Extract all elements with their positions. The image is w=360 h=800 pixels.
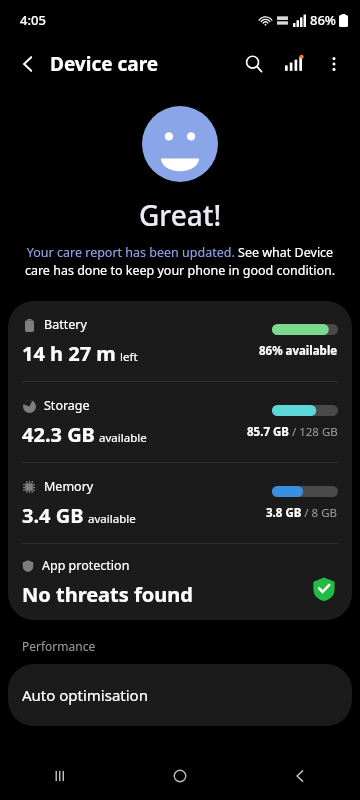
button[interactable]: App protection: [8, 544, 352, 620]
staticText: 3.8 GB / 8 GB: [266, 505, 338, 521]
staticText: available: [88, 511, 136, 527]
button[interactable]: Storage: [8, 382, 352, 462]
staticText: Storage: [44, 397, 90, 414]
staticText: Performance: [22, 638, 96, 654]
staticText: No threats found: [22, 581, 193, 608]
staticText: Memory: [44, 478, 94, 495]
button[interactable]: Home: [156, 752, 204, 800]
staticText: Battery: [44, 316, 87, 333]
staticText: 4:05: [20, 11, 46, 29]
staticText: Auto optimisation: [22, 685, 148, 705]
button[interactable]: Auto optimisation: [8, 664, 352, 726]
staticText: available: [99, 430, 147, 446]
button[interactable]: More options: [314, 44, 354, 84]
staticText: 42.3 GB: [22, 421, 95, 448]
button[interactable]: Usage statistics: [274, 44, 314, 84]
staticText: 86% available: [259, 343, 338, 359]
button[interactable]: Back: [8, 44, 48, 84]
staticText: Device care: [50, 51, 159, 77]
staticText: 14 h 27 m: [22, 340, 116, 367]
staticText: 85.7 GB / 128 GB: [247, 424, 338, 440]
button[interactable]: Battery: [8, 301, 352, 381]
button[interactable]: Memory: [8, 463, 352, 543]
button[interactable]: Back: [276, 752, 324, 800]
staticText: Your care report has been updated. See w…: [22, 244, 338, 279]
staticText: Great!: [139, 196, 222, 234]
staticText: 86%: [310, 11, 336, 29]
staticText: left: [120, 349, 138, 365]
staticText: App protection: [42, 557, 130, 574]
staticText: 3.4 GB: [22, 502, 84, 529]
button[interactable]: Search: [234, 44, 274, 84]
button[interactable]: Recents: [36, 752, 84, 800]
